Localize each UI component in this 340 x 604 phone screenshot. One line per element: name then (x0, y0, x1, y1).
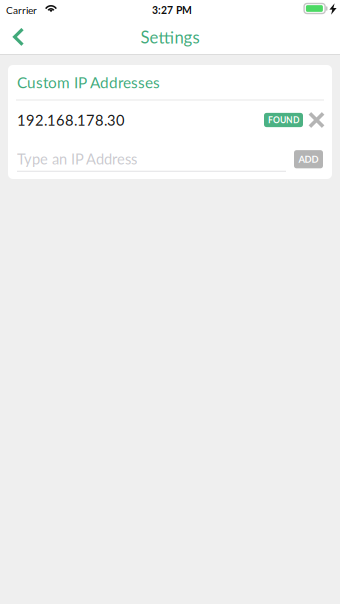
staticText: Settings (140, 27, 199, 47)
staticText: FOUND (268, 115, 299, 125)
staticText: ADD (298, 154, 318, 165)
staticText: 3:27 PM (152, 4, 192, 16)
staticText: Carrier (6, 4, 37, 16)
button[interactable]: Remove 192.168.178.30 (303, 111, 325, 128)
staticText: 192.168.178.30 (17, 111, 125, 129)
staticText: Type an IP Address (17, 150, 137, 167)
button[interactable]: Back (0, 20, 36, 53)
staticText: Custom IP Addresses (17, 73, 160, 91)
button[interactable]: ADD (294, 150, 323, 168)
